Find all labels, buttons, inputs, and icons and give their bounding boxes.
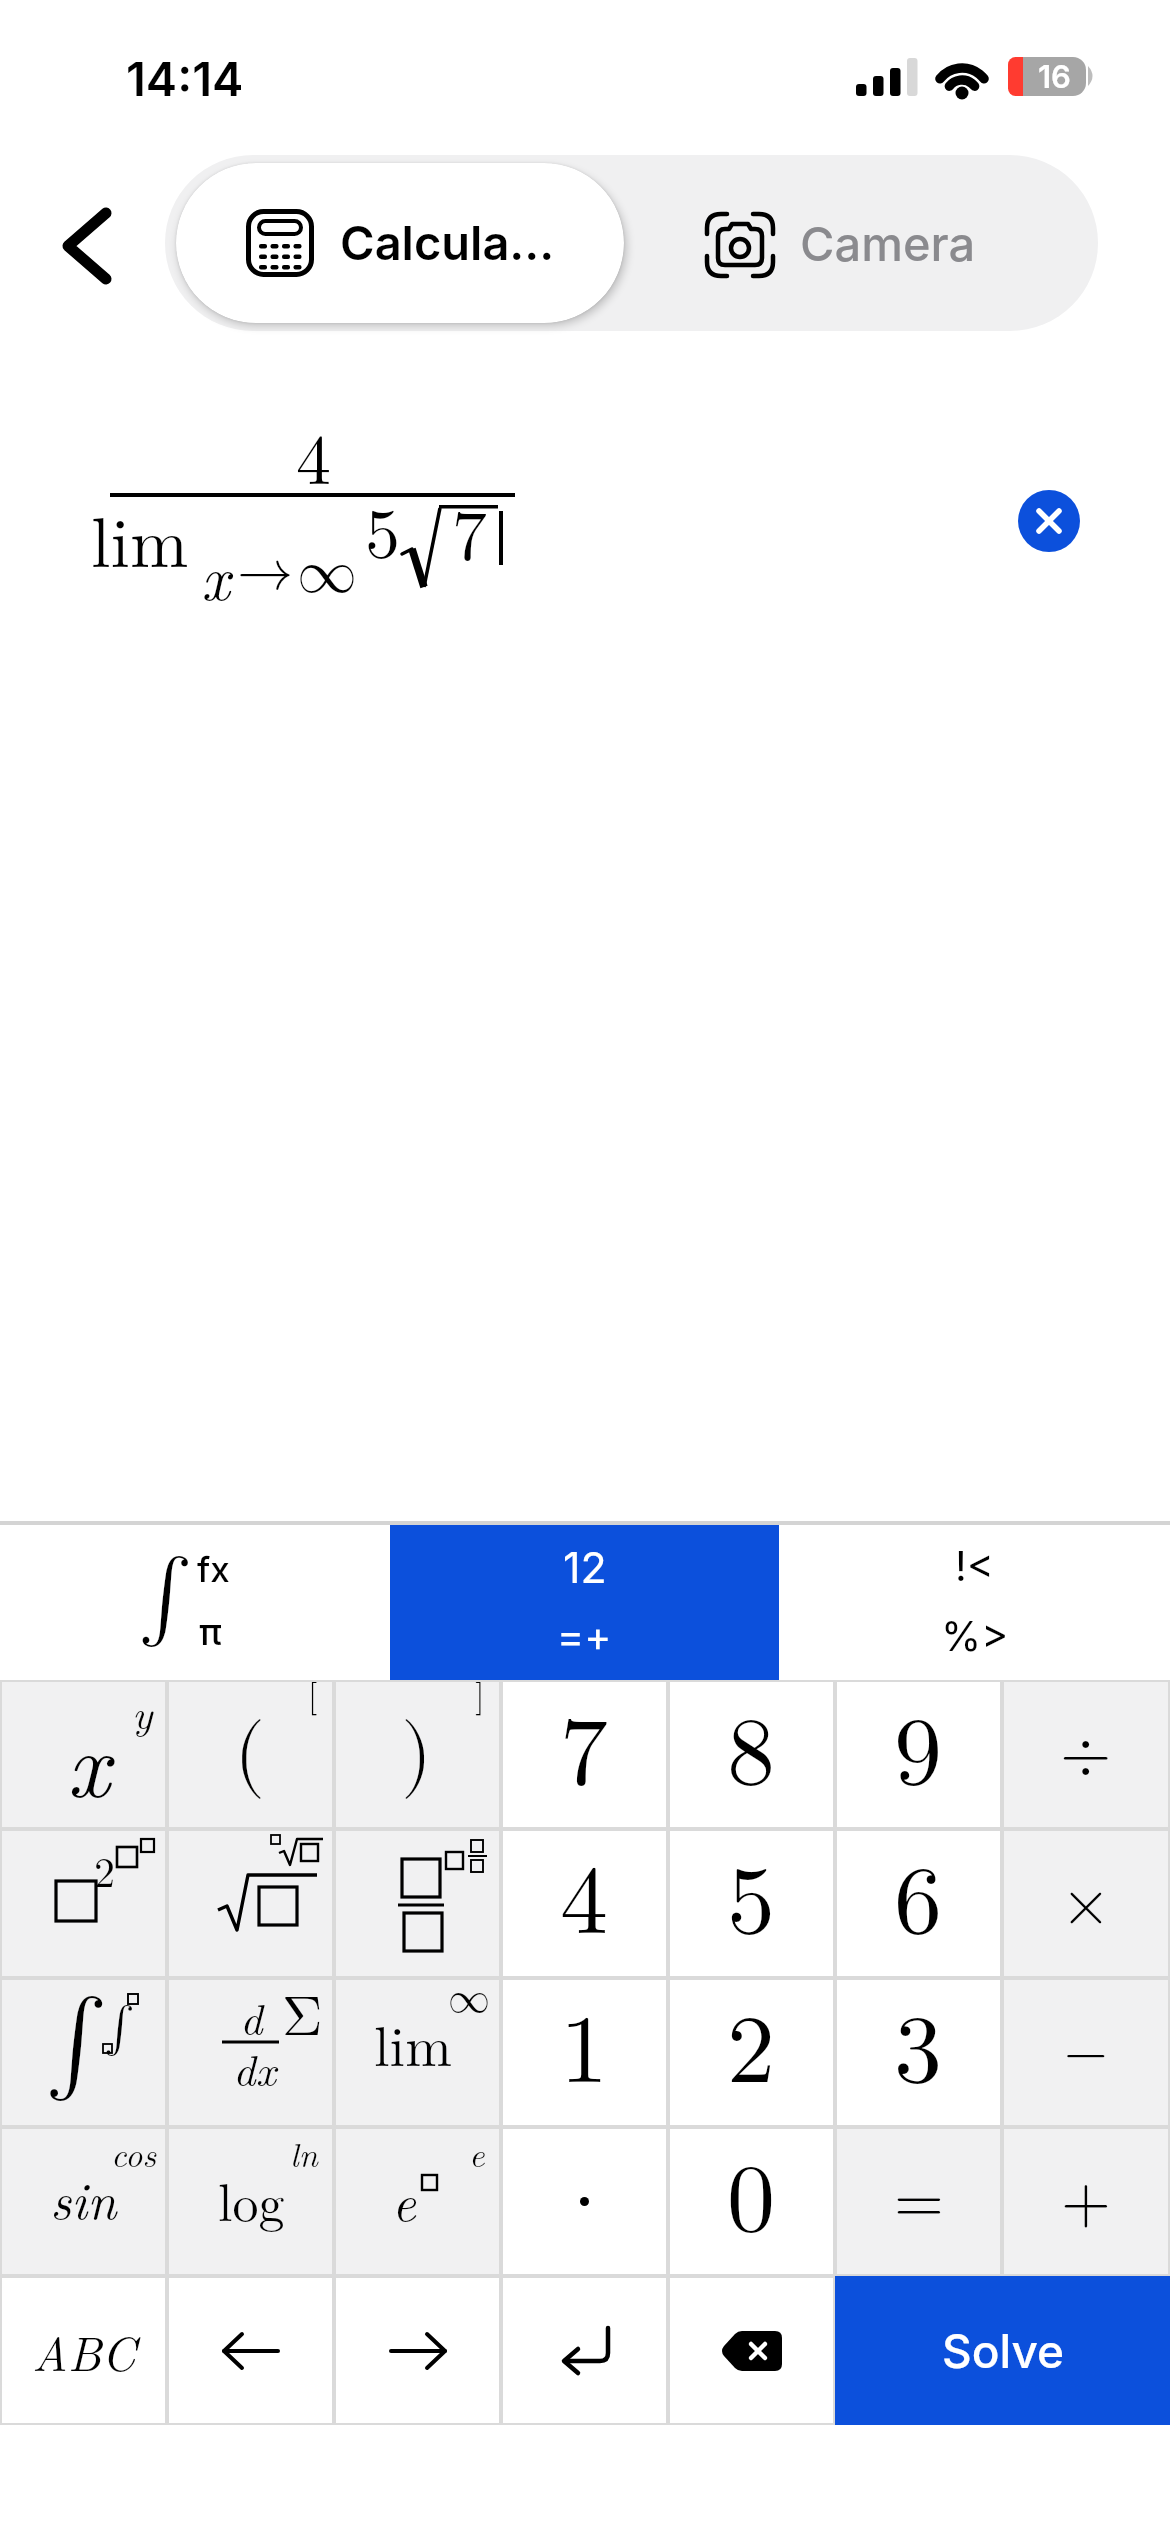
staticText: + (1061, 2170, 1111, 2234)
button[interactable]: 1 (501, 1978, 668, 2127)
staticText: x (67, 1693, 110, 1823)
staticText: lim (91, 488, 189, 587)
staticText: =+ (557, 1611, 612, 1657)
button[interactable]: 5 (668, 1829, 835, 1978)
staticText: 8 (727, 1707, 775, 1803)
button[interactable] (501, 2276, 668, 2425)
button[interactable]: Calcula... (176, 163, 624, 323)
staticText: 2 (727, 2005, 775, 2101)
staticText: ( (234, 1715, 266, 1795)
staticText: 4 (296, 428, 331, 498)
staticText: [ (308, 1680, 318, 1714)
staticText: π (199, 1609, 222, 1653)
button[interactable]: ∫ (0, 1978, 167, 2127)
staticText: 2 (94, 1853, 116, 1895)
button[interactable]: 12 (390, 1525, 779, 1680)
staticText: ln (290, 2129, 318, 2177)
staticText: sin (50, 2160, 117, 2234)
staticText: Σ (282, 1990, 323, 2046)
button[interactable]: lim (334, 1978, 501, 2127)
button[interactable]: 0 (668, 2127, 835, 2276)
button[interactable]: Solve (835, 2276, 1170, 2425)
button[interactable]: − (1002, 1978, 1170, 2127)
staticText: ∫ (104, 2005, 135, 2051)
staticText: 16 (1038, 58, 1071, 96)
staticText: e (469, 2129, 485, 2177)
button[interactable] (48, 198, 128, 293)
staticText: 1 (560, 2005, 608, 2101)
staticText: 4 (560, 1856, 608, 1952)
button[interactable]: 2 (668, 1978, 835, 2127)
staticText: Solve (942, 2323, 1064, 2379)
button[interactable] (334, 2276, 501, 2425)
staticText: Calcula... (340, 214, 555, 271)
staticText: y (132, 1682, 153, 1741)
staticText: 5 (365, 501, 400, 571)
button[interactable]: e (334, 2127, 501, 2276)
button[interactable] (167, 2276, 334, 2425)
staticText: 7 (452, 503, 487, 573)
button[interactable]: 6 (835, 1829, 1002, 1978)
button[interactable]: = (835, 2127, 1002, 2276)
staticText: e (392, 2162, 416, 2236)
button[interactable]: sin (0, 2127, 167, 2276)
staticText: cos (111, 2129, 157, 2177)
button[interactable] (501, 2127, 668, 2276)
staticText: − (1064, 2025, 1108, 2081)
staticText: 0 (727, 2154, 775, 2250)
button[interactable]: 8 (668, 1680, 835, 1829)
staticText: ] (475, 1680, 485, 1714)
button[interactable]: × (1002, 1829, 1170, 1978)
staticText: Camera (800, 215, 976, 272)
staticText: fx (197, 1548, 230, 1590)
staticText: 3 (894, 2005, 942, 2101)
button[interactable]: ABC (0, 2276, 167, 2425)
button[interactable]: Camera (625, 155, 1098, 331)
button[interactable]: 3 (835, 1978, 1002, 2127)
button[interactable]: ) (334, 1680, 501, 1829)
staticText: ÷ (1060, 1722, 1112, 1788)
staticText: ∞ (297, 544, 357, 604)
button[interactable]: 9 (835, 1680, 1002, 1829)
staticText: = (894, 2170, 944, 2234)
staticText: x (201, 530, 230, 618)
button[interactable] (334, 1829, 501, 1978)
staticText: ABC (32, 2317, 136, 2385)
staticText: 5 (727, 1856, 775, 1952)
button[interactable]: ∫ (0, 1525, 390, 1680)
staticText: × (1061, 1872, 1111, 1936)
button[interactable]: x (0, 1680, 167, 1829)
button[interactable]: !< (779, 1525, 1170, 1680)
staticText: 14:14 (126, 50, 244, 107)
staticText: lim (374, 2003, 452, 2082)
staticText: 6 (894, 1856, 942, 1952)
button[interactable]: log (167, 2127, 334, 2276)
staticText: d (240, 1985, 263, 2047)
button[interactable] (1018, 490, 1080, 552)
button[interactable]: 2 (0, 1829, 167, 1978)
staticText: 12 (563, 1541, 607, 1589)
staticText: log (218, 2162, 285, 2236)
staticText: !< (955, 1541, 994, 1589)
button[interactable] (668, 2276, 835, 2425)
staticText: %> (941, 1611, 1009, 1657)
staticText: ∫ (45, 1996, 108, 2090)
staticText: ∞ (448, 1978, 491, 2020)
button[interactable]: 7 (501, 1680, 668, 1829)
staticText: dx (233, 2036, 276, 2098)
button[interactable]: ( (167, 1680, 334, 1829)
button[interactable]: + (1002, 2127, 1170, 2276)
button[interactable]: ÷ (1002, 1680, 1170, 1829)
staticText: ) (401, 1715, 433, 1795)
staticText: 9 (894, 1707, 942, 1803)
staticText: 7 (560, 1707, 608, 1803)
button[interactable]: d (167, 1978, 334, 2127)
staticText: → (237, 544, 293, 600)
staticText: ∫ (138, 1556, 193, 1638)
button[interactable]: 4 (501, 1829, 668, 1978)
button[interactable] (167, 1829, 334, 1978)
